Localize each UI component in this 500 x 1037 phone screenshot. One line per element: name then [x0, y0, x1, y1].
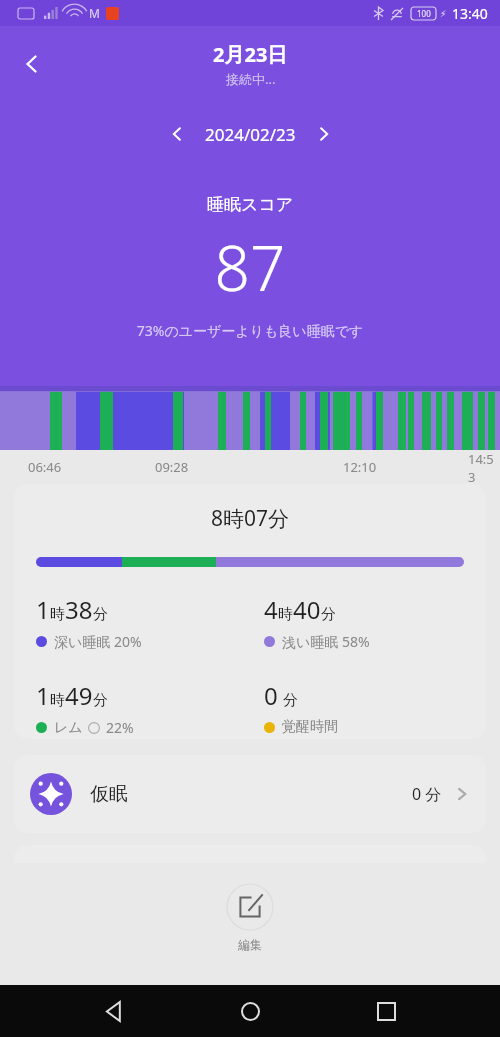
staticText: 2024/02/23: [205, 123, 296, 146]
staticText: 4: [264, 593, 278, 626]
staticText: 1: [36, 679, 50, 712]
staticText: 時: [50, 605, 65, 624]
button[interactable]: 前の日: [159, 116, 195, 152]
button[interactable]: 戻る: [92, 989, 136, 1033]
staticText: 分: [93, 605, 108, 624]
button[interactable]: 8時07分: [14, 484, 486, 739]
staticText: 0: [264, 679, 278, 712]
staticText: 深い睡眠 20%: [54, 632, 142, 651]
staticText: 100: [417, 8, 431, 19]
staticText: レム: [54, 719, 83, 737]
staticText: 73%のユーザーよりも良い睡眠です: [0, 321, 500, 340]
button[interactable]: 仮眠: [14, 755, 486, 833]
button[interactable]: 戻る: [8, 40, 56, 88]
staticText: 2月23日: [213, 41, 288, 68]
staticText: 13:40: [452, 4, 488, 23]
staticText: 編集: [238, 937, 262, 952]
staticText: 09:28: [155, 458, 189, 476]
staticText: 分: [321, 605, 336, 624]
staticText: 8時07分: [14, 504, 486, 533]
staticText: 06:46: [28, 458, 62, 476]
staticText: 仮眠: [90, 782, 128, 806]
button[interactable]: ホーム: [228, 989, 272, 1033]
staticText: 分: [93, 691, 108, 710]
staticText: 40: [293, 593, 321, 626]
staticText: 時: [50, 691, 65, 710]
staticText: 0 分: [412, 783, 442, 805]
button[interactable]: 最近のアプリ: [364, 989, 408, 1033]
staticText: 14:53: [468, 450, 500, 484]
staticText: 時: [278, 605, 293, 624]
staticText: 49: [65, 679, 93, 712]
staticText: 覚醒時間: [282, 718, 338, 736]
staticText: 浅い睡眠 58%: [282, 632, 370, 651]
staticText: 1: [36, 593, 50, 626]
staticText: 38: [65, 593, 93, 626]
staticText: 接続中...: [226, 70, 276, 88]
staticText: 87: [0, 225, 500, 309]
staticText: M: [89, 5, 100, 21]
button[interactable]: 編集: [222, 879, 278, 956]
other: 編集: [226, 883, 274, 931]
button[interactable]: 次の日: [306, 116, 342, 152]
staticText: 22%: [106, 718, 134, 737]
staticText: 12:10: [343, 458, 377, 476]
staticText: 分: [283, 691, 298, 710]
staticText: 睡眠スコア: [0, 194, 500, 215]
staticText: ⚡: [440, 9, 447, 19]
